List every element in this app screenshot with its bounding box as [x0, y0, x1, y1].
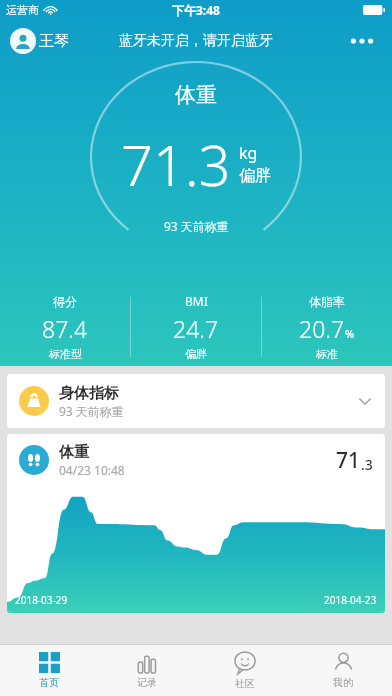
staticText: 王琴 — [39, 32, 69, 51]
button[interactable]: BMI — [131, 291, 261, 363]
staticText: 得分 — [53, 294, 77, 309]
staticText: 体重 — [175, 82, 217, 108]
staticText: 24.7 — [173, 313, 219, 344]
button[interactable]: More options — [342, 21, 382, 61]
button[interactable]: 社区 — [196, 645, 294, 696]
staticText: 2018-04-23 — [324, 593, 377, 607]
staticText: 04/23 10:48 — [59, 462, 125, 478]
staticText: 20.7 — [299, 313, 345, 344]
staticText: 社区 — [235, 677, 255, 690]
staticText: 体重 — [59, 443, 89, 462]
staticText: 71 — [336, 446, 361, 475]
staticText: kg — [239, 142, 258, 164]
staticText: 蓝牙未开启，请开启蓝牙 — [119, 32, 273, 50]
button[interactable]: 体重 — [7, 434, 385, 613]
button[interactable]: 我的 — [294, 645, 392, 696]
staticText: 偏胖 — [239, 166, 271, 186]
button[interactable]: 体脂率 — [262, 292, 392, 363]
staticText: .3 — [361, 455, 373, 474]
staticText: 记录 — [137, 676, 157, 689]
staticText: 体脂率 — [309, 294, 345, 309]
staticText: 标准 — [316, 347, 338, 361]
staticText: 2018-03-29 — [15, 593, 68, 607]
button[interactable]: 得分 — [0, 292, 130, 363]
staticText: 标准型 — [49, 347, 82, 361]
staticText: 我的 — [333, 676, 353, 689]
staticText: 93 天前称重 — [59, 403, 124, 419]
staticText: 下午3:48 — [172, 2, 220, 18]
button[interactable]: 首页 — [0, 645, 98, 696]
staticText: BMI — [185, 293, 208, 309]
button[interactable]: 记录 — [98, 645, 196, 696]
staticText: 71.3 — [121, 126, 231, 202]
button[interactable]: 王琴 — [8, 26, 71, 56]
staticText: 身体指标 — [59, 384, 119, 403]
button[interactable]: 身体指标 — [7, 374, 385, 428]
staticText: 偏胖 — [185, 347, 207, 361]
staticText: 运营商 — [6, 3, 39, 17]
staticText: 首页 — [39, 676, 59, 689]
staticText: 87.4 — [42, 313, 88, 344]
staticText: 93 天前称重 — [164, 218, 229, 234]
staticText: % — [345, 326, 355, 341]
